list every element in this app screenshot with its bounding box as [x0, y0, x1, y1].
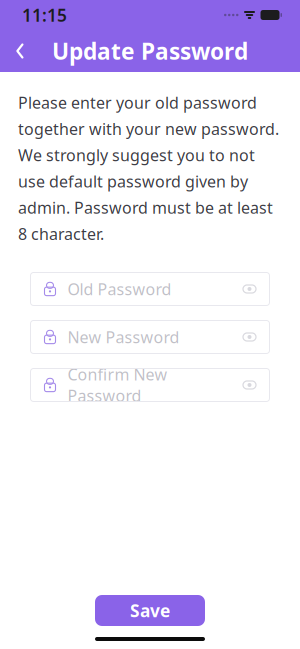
button[interactable]: Old Password — [30, 272, 269, 305]
button[interactable]: Back — [0, 30, 40, 72]
staticText: Update Password — [52, 36, 248, 66]
staticText: New Password — [67, 326, 179, 348]
button[interactable]: New Password — [30, 320, 269, 353]
button[interactable]: Save — [95, 595, 205, 626]
staticText: 11:15 — [22, 3, 67, 26]
staticText: Old Password — [67, 278, 171, 300]
staticText: Please enter your old password together … — [18, 92, 279, 244]
button[interactable]: Confirm New Password — [30, 368, 269, 401]
staticText: Save — [130, 599, 170, 622]
staticText: Confirm New Password — [67, 364, 167, 406]
